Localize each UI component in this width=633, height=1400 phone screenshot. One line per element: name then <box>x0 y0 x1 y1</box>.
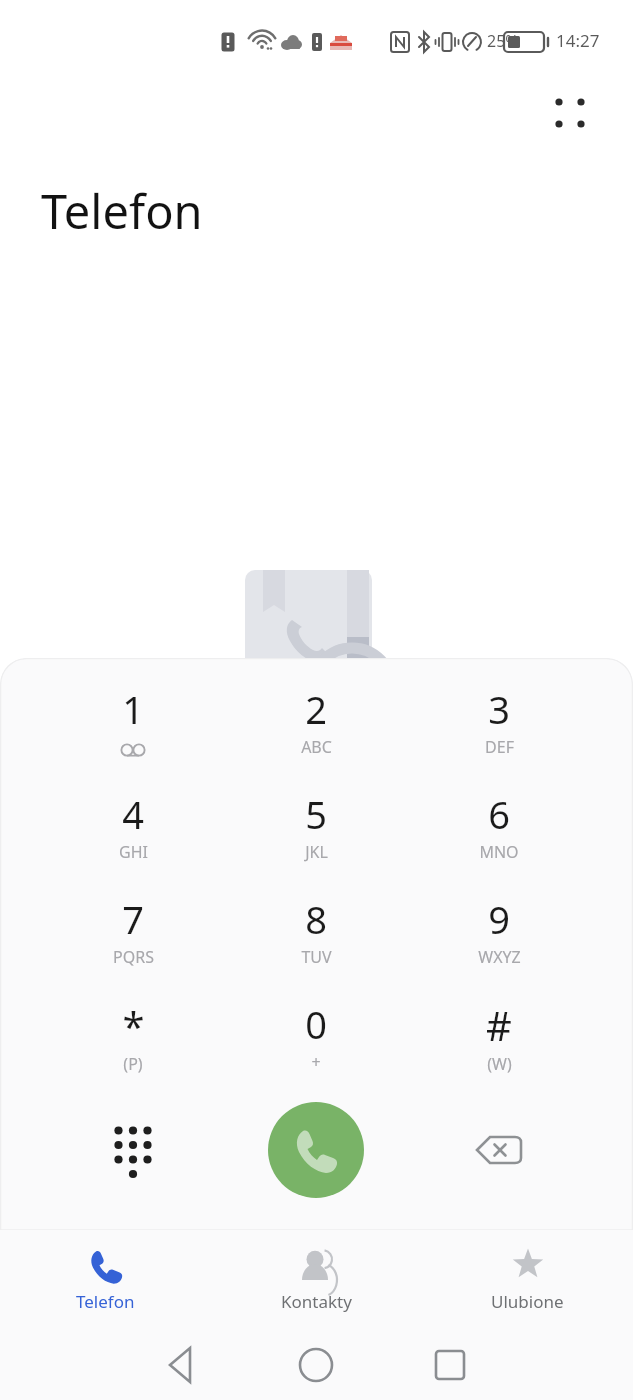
button[interactable]: Home <box>280 1330 352 1400</box>
button[interactable]: * <box>58 992 208 1092</box>
staticText: TUV <box>301 946 332 968</box>
staticText: GHI <box>119 841 148 863</box>
button[interactable]: 9 <box>424 887 574 987</box>
button[interactable]: 3 <box>424 677 574 777</box>
staticText: Telefon <box>76 1290 135 1313</box>
staticText: 6 <box>488 788 510 840</box>
staticText: 25% <box>487 30 519 52</box>
button[interactable]: Back <box>146 1330 218 1400</box>
staticText: (W) <box>487 1053 512 1075</box>
button[interactable]: Ulubione <box>422 1230 633 1330</box>
staticText: 7 <box>122 893 144 945</box>
staticText: WXYZ <box>478 946 521 968</box>
button[interactable]: 7 <box>58 887 208 987</box>
staticText: # <box>486 998 512 1052</box>
button[interactable]: Telefon <box>0 1230 211 1330</box>
staticText: 14:27 <box>556 29 600 52</box>
button[interactable]: 2 <box>241 677 391 777</box>
staticText: JKL <box>305 841 328 863</box>
staticText: 4 <box>122 788 144 840</box>
staticText: 5 <box>305 788 327 840</box>
button[interactable]: Hide keypad <box>85 1102 181 1198</box>
button[interactable]: Recents <box>414 1330 486 1400</box>
button[interactable]: Backspace <box>451 1102 547 1198</box>
staticText: 9 <box>488 893 510 945</box>
staticText: Ulubione <box>491 1290 564 1313</box>
staticText: DEF <box>485 736 514 758</box>
button[interactable]: 6 <box>424 782 574 882</box>
staticText: 2 <box>305 683 327 735</box>
staticText: * <box>122 998 145 1052</box>
button[interactable]: 1 <box>58 677 208 777</box>
button[interactable]: 0 <box>241 992 391 1092</box>
staticText: 1 <box>122 683 144 735</box>
staticText: PQRS <box>113 946 154 968</box>
button[interactable]: # <box>424 992 574 1092</box>
button[interactable]: Call <box>268 1102 364 1198</box>
staticText: 3 <box>488 683 510 735</box>
staticText: Kontakty <box>281 1290 352 1313</box>
button[interactable]: More options <box>538 81 602 145</box>
staticText: 0 <box>305 998 327 1050</box>
staticText: MNO <box>479 841 519 863</box>
staticText: ABC <box>301 736 332 758</box>
button[interactable]: Kontakty <box>211 1230 422 1330</box>
staticText: Telefon <box>41 179 203 243</box>
button[interactable]: 8 <box>241 887 391 987</box>
staticText: 8 <box>305 893 327 945</box>
staticText: (P) <box>123 1053 143 1075</box>
button[interactable]: 4 <box>58 782 208 882</box>
staticText: + <box>311 1051 321 1073</box>
button[interactable]: 5 <box>241 782 391 882</box>
